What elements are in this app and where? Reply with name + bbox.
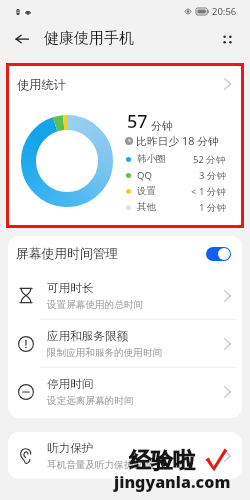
- staticText: 健康使用手机: [44, 29, 134, 48]
- staticText: 听力保护: [47, 441, 94, 456]
- staticText: jingyanla.com: [114, 471, 231, 493]
- staticText: 其他: [137, 201, 156, 213]
- button[interactable]: Screen time management toggle: [206, 247, 231, 261]
- staticText: 52 分钟: [193, 153, 226, 166]
- button[interactable]: 应用和服务限额: [8, 320, 242, 367]
- staticText: 20:56: [212, 5, 237, 18]
- staticText: 3 分钟: [199, 169, 226, 182]
- staticText: 1 分钟: [199, 201, 226, 214]
- staticText: < 1 分钟: [191, 185, 226, 198]
- staticText: 57: [127, 109, 148, 134]
- staticText: 限制应用和服务的使用时间: [47, 347, 163, 359]
- staticText: QQ: [137, 169, 152, 182]
- button[interactable]: 听力保护: [8, 432, 242, 479]
- staticText: 韩小圈: [137, 153, 166, 165]
- staticText: 应用和服务限额: [47, 329, 129, 344]
- button[interactable]: 可用时长: [8, 272, 242, 319]
- staticText: 比昨日少 18 分钟: [136, 133, 219, 148]
- staticText: 设置: [137, 185, 156, 197]
- button[interactable]: Back: [12, 29, 32, 49]
- staticText: 屏幕使用时间管理: [16, 246, 119, 262]
- staticText: 停用时间: [47, 377, 94, 392]
- button[interactable]: 使用统计: [8, 65, 242, 103]
- staticText: 分钟: [151, 119, 173, 133]
- button[interactable]: 停用时间: [8, 368, 242, 415]
- button[interactable]: 屏幕使用时间管理: [8, 236, 242, 272]
- button[interactable]: More options: [216, 28, 238, 50]
- staticText: 设置屏幕使用的总时间: [47, 299, 143, 311]
- staticText: 可用时长: [47, 281, 94, 296]
- staticText: 耳机音量及听力保护设置: [47, 459, 153, 471]
- staticText: 经验啦: [129, 447, 195, 475]
- staticText: 使用统计: [17, 77, 66, 92]
- staticText: 设定远离屏幕的时间: [47, 395, 134, 407]
